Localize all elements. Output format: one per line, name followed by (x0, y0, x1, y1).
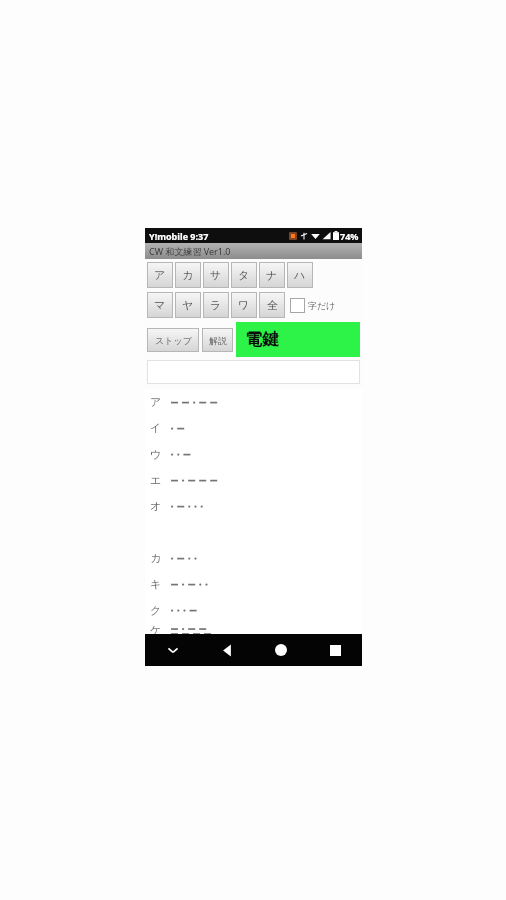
button[interactable]: ク (145, 597, 362, 623)
staticText: ストップ (155, 335, 192, 346)
staticText: 電鍵 (245, 329, 279, 350)
button[interactable]: マ (147, 292, 173, 318)
staticText: Y!mobile 9:37 (149, 230, 209, 242)
button[interactable]: Hide keyboard (145, 634, 200, 666)
button[interactable]: ア (145, 389, 362, 415)
button[interactable]: ナ (259, 262, 285, 288)
staticText: ラ (210, 298, 222, 312)
button[interactable]: ラ (203, 292, 229, 318)
staticText: 解説 (209, 335, 227, 346)
button[interactable]: エ (145, 467, 362, 493)
button[interactable]: キ (145, 571, 362, 597)
button[interactable]: オ (145, 493, 362, 519)
staticText: ケ (150, 623, 162, 634)
staticText: イ (150, 421, 162, 435)
button[interactable]: ウ (145, 441, 362, 467)
staticText: タ (238, 268, 250, 282)
button[interactable]: タ (231, 262, 257, 288)
button[interactable]: 全 (259, 292, 285, 318)
button[interactable]: サ (203, 262, 229, 288)
button[interactable]: 電鍵 (236, 322, 360, 357)
staticText: カ (150, 551, 162, 565)
staticText: ヤ (182, 298, 194, 312)
staticText: ク (150, 603, 162, 617)
button[interactable]: ケ (145, 623, 362, 634)
button[interactable]: カ (145, 545, 362, 571)
button[interactable]: Recent apps (308, 634, 362, 666)
staticText: ナ (266, 268, 278, 282)
button[interactable]: ワ (231, 292, 257, 318)
staticText: マ (154, 298, 166, 312)
button[interactable]: カ (175, 262, 201, 288)
staticText: ウ (150, 447, 162, 461)
button[interactable]: 解説 (202, 328, 233, 352)
button[interactable] (147, 360, 360, 384)
button[interactable]: イ (145, 415, 362, 441)
staticText: エ (150, 473, 162, 487)
staticText: サ (210, 268, 222, 282)
button[interactable]: ハ (287, 262, 313, 288)
button[interactable]: ア (147, 262, 173, 288)
button[interactable]: ヤ (175, 292, 201, 318)
staticText: ア (154, 268, 166, 282)
staticText: ワ (238, 298, 250, 312)
staticText: ア (150, 395, 162, 409)
staticText: 74% (340, 230, 359, 242)
staticText: CW 和文練習 Ver1.0 (149, 245, 231, 257)
staticText: キ (150, 577, 162, 591)
staticText: カ (182, 268, 194, 282)
staticText: 全 (267, 298, 278, 312)
staticText: ハ (294, 268, 306, 282)
button[interactable]: ストップ (147, 328, 199, 352)
staticText: 字だけ (308, 300, 336, 311)
staticText: オ (150, 499, 162, 513)
button[interactable]: 字だけ (290, 298, 336, 313)
button[interactable]: Back (200, 634, 254, 666)
button[interactable]: Home (254, 634, 308, 666)
